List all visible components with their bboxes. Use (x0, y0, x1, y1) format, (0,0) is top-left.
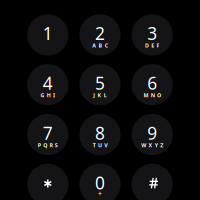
staticText: Q (43, 142, 47, 149)
staticText: V (104, 142, 107, 149)
staticText: 3 (147, 22, 157, 45)
staticText: + (98, 189, 102, 198)
button[interactable]: 3 DEF (132, 14, 173, 55)
staticText: S (55, 142, 58, 149)
staticText: L (104, 92, 107, 99)
button[interactable]: 6 MNO (132, 64, 173, 105)
staticText: Y (155, 142, 158, 149)
staticText: 2 (95, 22, 105, 45)
staticText: P (38, 142, 41, 149)
staticText: 6 (147, 72, 157, 95)
staticText: B (98, 42, 102, 49)
staticText: A (92, 42, 96, 49)
button[interactable]: 7 PQRS (27, 114, 68, 155)
staticText: R (49, 142, 52, 149)
staticText: H (47, 92, 51, 99)
staticText: N (151, 92, 155, 99)
staticText: 5 (95, 72, 105, 95)
staticText: 8 (95, 121, 105, 144)
staticText: X (149, 142, 153, 149)
staticText: 9 (147, 121, 157, 144)
staticText: 0 (95, 171, 105, 194)
staticText: 7 (43, 121, 53, 144)
button[interactable]: Pound (132, 164, 173, 200)
staticText: I (53, 92, 55, 99)
button[interactable]: Star (27, 164, 68, 200)
staticText: G (40, 92, 44, 99)
staticText: F (156, 42, 159, 49)
staticText: J (93, 92, 95, 99)
staticText: M (143, 92, 148, 99)
staticText: E (151, 42, 154, 49)
button[interactable]: 2 ABC (79, 14, 121, 55)
button[interactable]: 8 TUV (79, 114, 121, 155)
staticText: 1 (43, 22, 53, 45)
button[interactable]: 9 WXYZ (132, 114, 173, 155)
staticText: T (93, 142, 96, 149)
staticText: W (141, 142, 146, 149)
button[interactable]: 5 JKL (79, 64, 121, 105)
button[interactable]: 0 plus (79, 164, 121, 200)
staticText: K (97, 92, 101, 99)
staticText: U (98, 142, 102, 149)
staticText: C (105, 42, 108, 49)
button[interactable]: 1 (27, 14, 68, 55)
staticText: D (145, 42, 149, 49)
staticText: 4 (43, 72, 53, 95)
staticText: Z (160, 142, 163, 149)
button[interactable]: 4 GHI (27, 64, 68, 105)
staticText: O (157, 92, 161, 99)
